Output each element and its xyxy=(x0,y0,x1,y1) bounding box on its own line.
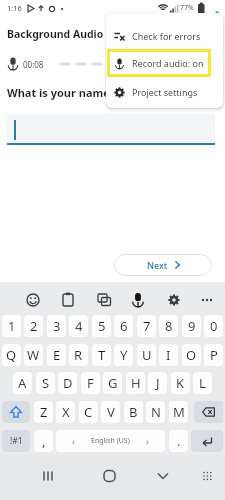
staticText: U xyxy=(142,346,152,364)
button[interactable]: ‹ xyxy=(56,430,165,452)
staticText: O xyxy=(186,346,197,364)
button[interactable]: D xyxy=(58,372,77,394)
button[interactable]: Check for errors xyxy=(106,23,223,49)
button[interactable]: Q xyxy=(2,344,21,366)
button[interactable]: A xyxy=(13,372,32,394)
staticText: 8 xyxy=(165,317,173,335)
staticText: Next xyxy=(147,259,168,271)
button[interactable]: E xyxy=(47,344,66,366)
button[interactable]: Next xyxy=(114,254,212,276)
staticText: F xyxy=(87,374,94,392)
staticText: What is your name? xyxy=(7,85,116,100)
staticText: S xyxy=(42,374,50,392)
staticText: !#1 xyxy=(10,435,23,447)
staticText: 1:16 xyxy=(7,3,22,13)
button[interactable]: Y xyxy=(114,344,133,366)
button[interactable] xyxy=(7,114,215,145)
button[interactable]: I xyxy=(159,344,178,366)
button[interactable]: U xyxy=(137,344,156,366)
staticText: G xyxy=(108,374,118,392)
button[interactable]: 9 xyxy=(182,315,201,337)
staticText: E xyxy=(53,346,61,364)
button[interactable]: X xyxy=(56,401,75,423)
button[interactable]: V xyxy=(101,401,120,423)
button[interactable]: N xyxy=(146,401,165,423)
staticText: M xyxy=(173,403,185,421)
staticText: N xyxy=(151,403,161,421)
button[interactable]: S xyxy=(36,372,55,394)
staticText: 0 xyxy=(210,317,218,335)
button[interactable]: 2 xyxy=(24,315,43,337)
button[interactable] xyxy=(177,282,209,314)
staticText: 6 xyxy=(120,317,128,335)
button[interactable]: M xyxy=(169,401,188,423)
button[interactable]: 5 xyxy=(92,315,111,337)
button[interactable]: R xyxy=(69,344,88,366)
button[interactable]: T xyxy=(92,344,111,366)
button[interactable]: Z xyxy=(34,401,53,423)
button[interactable] xyxy=(194,401,223,423)
staticText: L xyxy=(199,374,206,392)
button[interactable] xyxy=(2,401,30,423)
staticText: › xyxy=(146,435,149,447)
button[interactable]: W xyxy=(24,344,43,366)
button[interactable]: B xyxy=(124,401,143,423)
button[interactable]: J xyxy=(148,372,167,394)
staticText: 5 xyxy=(98,317,106,335)
staticText: J xyxy=(156,374,160,392)
staticText: T xyxy=(98,346,106,364)
button[interactable]: G xyxy=(103,372,122,394)
button[interactable]: , xyxy=(34,430,53,452)
button[interactable]: !#1 xyxy=(2,430,30,452)
button[interactable] xyxy=(150,455,225,500)
button[interactable]: 7 xyxy=(137,315,156,337)
staticText: R xyxy=(74,346,83,364)
staticText: , xyxy=(42,432,46,450)
button[interactable] xyxy=(75,455,150,500)
button[interactable]: 3 xyxy=(47,315,66,337)
staticText: Project settings xyxy=(132,86,198,98)
button[interactable]: O xyxy=(182,344,201,366)
staticText: 7 xyxy=(143,317,151,335)
staticText: 1 xyxy=(8,317,16,335)
button[interactable]: H xyxy=(126,372,145,394)
staticText: I xyxy=(166,346,171,364)
staticText: Y xyxy=(120,346,128,364)
button[interactable]: C xyxy=(79,401,98,423)
staticText: X xyxy=(62,403,70,421)
button[interactable]: . xyxy=(169,430,188,452)
button[interactable]: 0 xyxy=(204,315,223,337)
staticText: . xyxy=(177,432,181,450)
button[interactable] xyxy=(113,282,145,314)
staticText: 77% xyxy=(180,3,194,13)
button[interactable] xyxy=(191,430,223,452)
button[interactable]: P xyxy=(204,344,223,366)
button[interactable]: 4 xyxy=(69,315,88,337)
staticText: English (US) xyxy=(91,436,130,446)
staticText: Q xyxy=(6,346,17,364)
button[interactable]: Record audio: on xyxy=(107,49,211,77)
staticText: H xyxy=(131,374,141,392)
staticText: P xyxy=(210,346,218,364)
button[interactable]: 1 xyxy=(2,315,21,337)
staticText: W xyxy=(27,346,40,364)
button[interactable]: 6 xyxy=(114,315,133,337)
button[interactable] xyxy=(145,282,177,314)
button[interactable]: K xyxy=(171,372,190,394)
button[interactable]: L xyxy=(193,372,212,394)
staticText: V xyxy=(107,403,115,421)
staticText: Z xyxy=(40,403,48,421)
button[interactable] xyxy=(16,282,49,314)
button[interactable]: F xyxy=(81,372,100,394)
staticText: B xyxy=(129,403,138,421)
button[interactable]: 8 xyxy=(159,315,178,337)
staticText: 2 xyxy=(30,317,38,335)
staticText: D xyxy=(63,374,73,392)
button[interactable] xyxy=(49,282,81,314)
button[interactable] xyxy=(81,282,113,314)
button[interactable] xyxy=(0,455,75,500)
staticText: Record audio: on xyxy=(132,57,204,69)
button[interactable]: Project settings xyxy=(106,79,223,105)
staticText: 4 xyxy=(75,317,83,335)
staticText: Check for errors xyxy=(132,30,201,42)
